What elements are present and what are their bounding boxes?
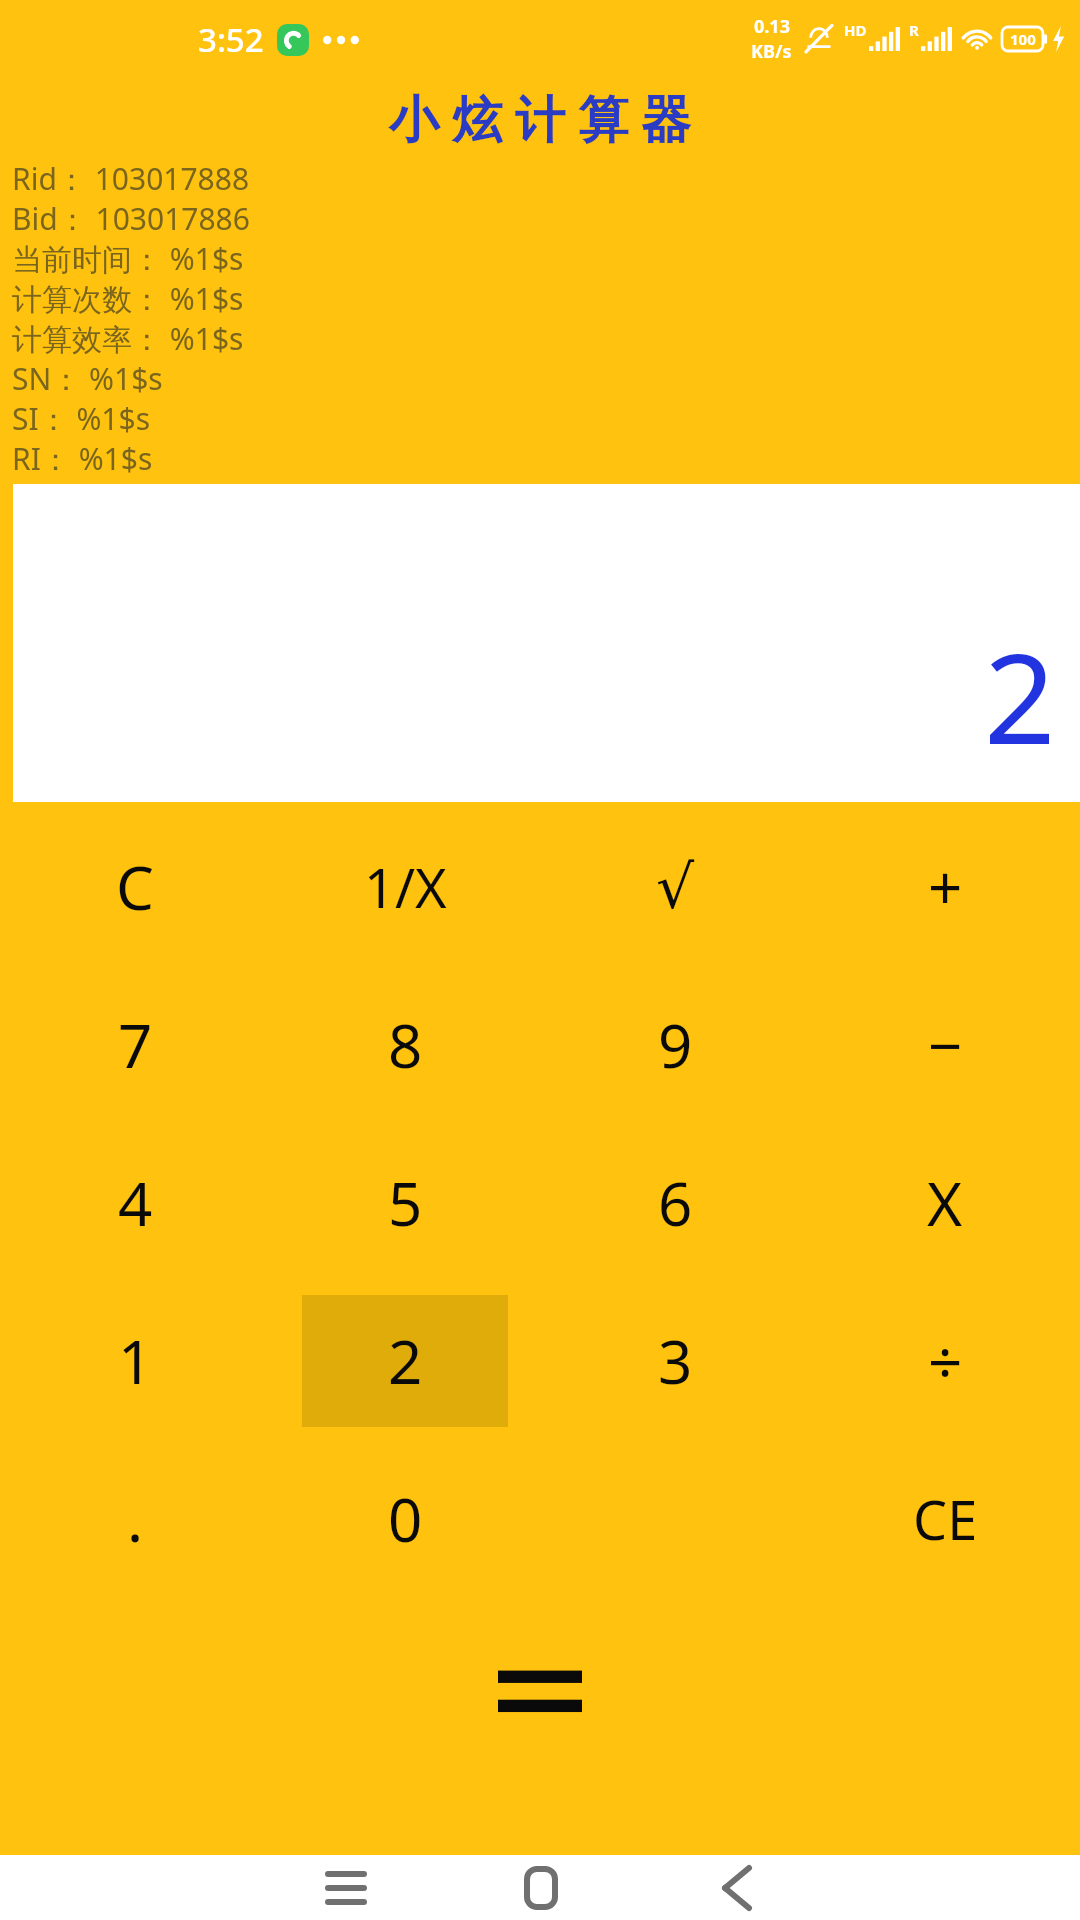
staticText: KB/s [751, 39, 792, 64]
staticText: 8 [388, 1004, 423, 1086]
button[interactable]: . [32, 1453, 238, 1585]
staticText: RI： %1$s [12, 438, 153, 478]
staticText: 4 [118, 1162, 153, 1244]
button[interactable]: 9 [572, 979, 778, 1111]
staticText: √ [656, 852, 695, 922]
button[interactable]: 2 [13, 484, 1080, 802]
button[interactable]: Home [443, 1855, 638, 1920]
staticText: HD [844, 20, 867, 40]
staticText: + [928, 846, 963, 928]
button[interactable]: 0 [302, 1453, 508, 1585]
button[interactable]: CE [842, 1453, 1048, 1585]
staticText: ÷ [928, 1320, 963, 1402]
button[interactable]: 1/X [302, 821, 508, 953]
button[interactable]: 2 [302, 1295, 508, 1427]
staticText: 小 炫 计 算 器 [389, 84, 691, 152]
staticText: . [127, 1478, 144, 1560]
staticText: 2 [984, 610, 1056, 780]
button[interactable]: ÷ [842, 1295, 1048, 1427]
staticText: 3 [658, 1320, 693, 1402]
staticText: X [927, 1162, 963, 1244]
staticText: C [116, 846, 154, 928]
button[interactable]: Back [638, 1855, 833, 1920]
staticText: 计算效率： %1$s [12, 318, 244, 358]
button[interactable]: 8 [302, 979, 508, 1111]
staticText: − [928, 1004, 963, 1086]
staticText: 0 [388, 1478, 423, 1560]
button[interactable]: X [842, 1137, 1048, 1269]
staticText: 计算次数： %1$s [12, 278, 244, 318]
button[interactable]: Recent apps [248, 1855, 443, 1920]
button[interactable]: + [842, 821, 1048, 953]
staticText: SN： %1$s [12, 358, 163, 398]
button[interactable]: − [842, 979, 1048, 1111]
staticText: 0.13 [754, 14, 790, 39]
button[interactable]: 4 [32, 1137, 238, 1269]
staticText: 9 [658, 1004, 693, 1086]
button[interactable]: C [32, 821, 238, 953]
staticText: 2 [388, 1320, 423, 1402]
staticText: R [909, 20, 919, 40]
staticText: 当前时间： %1$s [12, 238, 244, 278]
button[interactable]: 1 [32, 1295, 238, 1427]
staticText: 1 [118, 1320, 153, 1402]
button[interactable]: 7 [32, 979, 238, 1111]
button[interactable]: √ [572, 821, 778, 953]
staticText: 3:52 [198, 17, 264, 62]
button[interactable]: Equals [425, 1638, 655, 1748]
staticText: SI： %1$s [12, 398, 151, 438]
staticText: Rid： 103017888 [12, 158, 250, 198]
staticText: 6 [658, 1162, 693, 1244]
staticText: CE [913, 1482, 978, 1556]
staticText: 100 [1010, 29, 1036, 49]
staticText: Bid： 103017886 [12, 198, 250, 238]
staticText: 1/X [364, 850, 447, 924]
button[interactable]: 6 [572, 1137, 778, 1269]
button[interactable]: 3 [572, 1295, 778, 1427]
staticText: 5 [388, 1162, 423, 1244]
button[interactable]: 5 [302, 1137, 508, 1269]
staticText: 7 [118, 1004, 153, 1086]
